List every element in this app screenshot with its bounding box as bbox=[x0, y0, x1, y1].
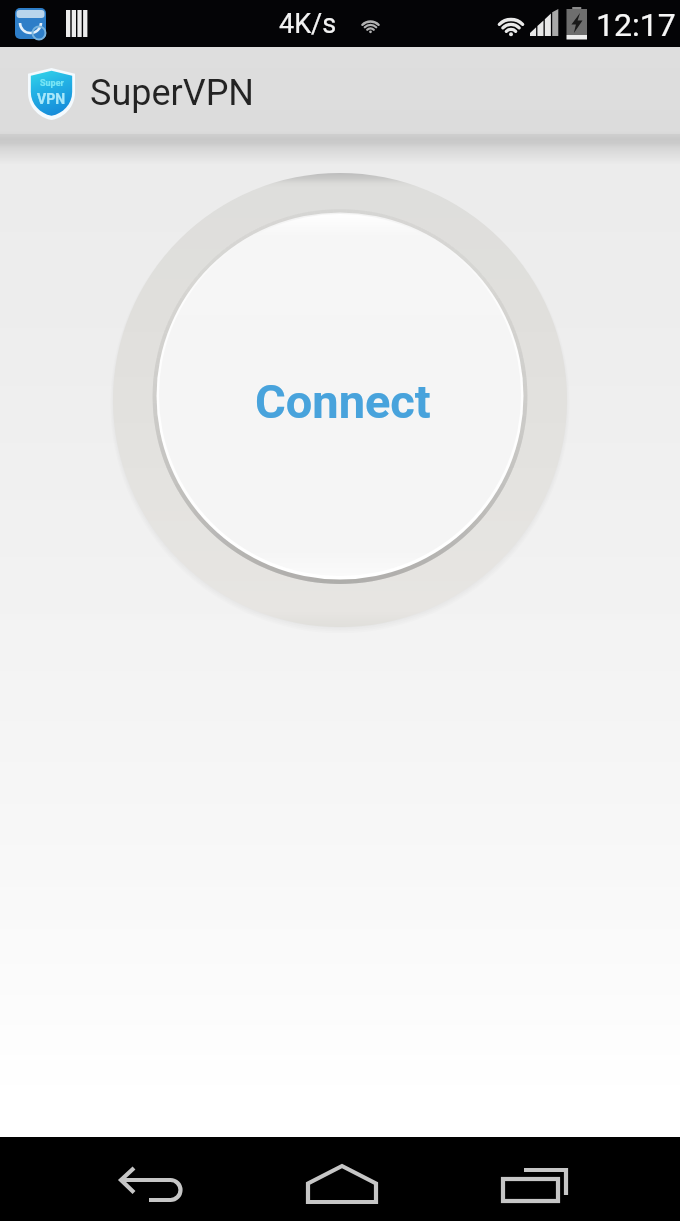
staticText: 12:17 bbox=[596, 6, 676, 44]
button[interactable]: Connect bbox=[100, 164, 580, 644]
button[interactable]: Back bbox=[63, 1137, 243, 1221]
staticText: SuperVPN bbox=[90, 72, 255, 114]
button[interactable]: Super bbox=[0, 47, 680, 134]
staticText: 4K/s bbox=[279, 8, 337, 40]
button[interactable]: Home bbox=[252, 1137, 432, 1221]
button[interactable]: Recent apps bbox=[445, 1137, 625, 1221]
staticText: Connect bbox=[255, 374, 431, 429]
staticText: Super bbox=[40, 78, 64, 89]
staticText: VPN bbox=[37, 91, 66, 107]
